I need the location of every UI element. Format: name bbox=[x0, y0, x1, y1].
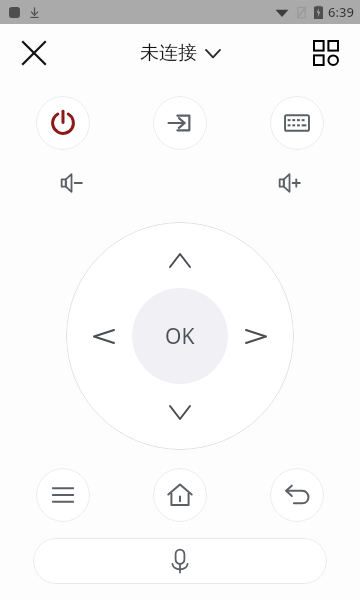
button[interactable]: 未连接 bbox=[130, 35, 230, 71]
button[interactable]: Close bbox=[12, 31, 56, 75]
button[interactable]: Menu bbox=[36, 468, 90, 522]
button[interactable]: Apps bbox=[304, 31, 348, 75]
button[interactable]: Right bbox=[232, 312, 280, 360]
button[interactable]: OK bbox=[132, 288, 228, 384]
button[interactable]: Keyboard bbox=[270, 96, 324, 150]
staticText: 6:39 bbox=[328, 3, 354, 21]
button[interactable]: Back bbox=[270, 468, 324, 522]
button[interactable]: Home bbox=[153, 468, 207, 522]
button[interactable]: Input source bbox=[153, 96, 207, 150]
button[interactable]: Power bbox=[36, 96, 90, 150]
button[interactable]: Volume up bbox=[266, 160, 312, 206]
button[interactable]: Left bbox=[80, 312, 128, 360]
staticText: OK bbox=[165, 322, 195, 351]
button[interactable]: Voice input bbox=[33, 538, 327, 584]
button[interactable]: Volume down bbox=[48, 160, 94, 206]
button[interactable]: Up bbox=[156, 236, 204, 284]
staticText: 未连接 bbox=[140, 41, 197, 65]
button[interactable]: Down bbox=[156, 388, 204, 436]
